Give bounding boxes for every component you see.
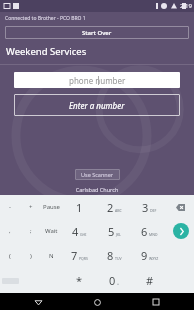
staticText: # [146, 273, 154, 288]
staticText: Weekend Services [6, 45, 87, 58]
button[interactable]: 6 [132, 219, 167, 243]
staticText: 9 [141, 248, 148, 263]
button[interactable]: 5 [97, 219, 132, 243]
staticText: * [76, 273, 83, 288]
staticText: 1 [76, 200, 83, 215]
staticText: Start Over [82, 29, 112, 37]
button[interactable]: 9 [132, 243, 167, 268]
staticText: MNO [149, 232, 158, 237]
button[interactable]: 0 [97, 268, 132, 293]
staticText: + [117, 281, 120, 286]
button[interactable]: N [41, 243, 62, 268]
button[interactable]: 2 [97, 195, 132, 219]
staticText: ) [30, 252, 32, 260]
staticText: 3 [142, 200, 149, 215]
other: Call [173, 223, 189, 239]
staticText: 0 [109, 273, 116, 288]
staticText: 2 [107, 200, 114, 215]
staticText: ; [30, 227, 32, 235]
staticText: WXYZ [149, 256, 159, 261]
staticText: phone number [69, 75, 126, 86]
button[interactable]: 4 [62, 219, 97, 243]
button[interactable]: Wait [41, 219, 62, 243]
button[interactable]: phone number [14, 72, 180, 88]
button[interactable]: + [20, 195, 41, 219]
staticText: Carlsbad Church [0, 186, 194, 193]
staticText: DEF [150, 208, 157, 213]
button[interactable]: Space [0, 268, 20, 293]
button[interactable]: 8 [97, 243, 132, 268]
staticText: Enter a number [69, 100, 125, 111]
staticText: Use Scanner [81, 171, 114, 178]
staticText: 7 [71, 248, 78, 263]
staticText: , [9, 227, 11, 235]
staticText: 5 [108, 224, 115, 239]
staticText: ( [9, 252, 11, 260]
button[interactable]: # [132, 268, 167, 293]
button[interactable]: 7 [62, 243, 97, 268]
staticText: 8 [107, 248, 114, 263]
button[interactable]: - [0, 195, 20, 219]
staticText: + [29, 203, 33, 211]
button[interactable]: Call [167, 219, 194, 243]
button[interactable]: , [0, 219, 20, 243]
button[interactable]: Pause [41, 195, 62, 219]
staticText: 4 [72, 224, 79, 239]
staticText: PQRS [79, 256, 88, 261]
staticText: ABC [115, 208, 122, 213]
other: Delete [176, 204, 185, 211]
button[interactable]: Use Scanner [81, 171, 114, 178]
button[interactable]: Back [30, 294, 46, 310]
staticText: Pause [43, 203, 60, 211]
button[interactable]: Home [89, 294, 105, 310]
button[interactable]: Start Over [5, 26, 189, 39]
button[interactable]: ) [20, 243, 41, 268]
staticText: 2:19 [180, 2, 192, 10]
button[interactable]: Delete [167, 195, 194, 219]
button[interactable]: * [62, 268, 97, 293]
staticText: Connected to Brother - PCO BRO 1 [5, 15, 86, 22]
staticText: - [9, 203, 11, 211]
staticText: GHI [80, 232, 87, 237]
staticText: JKL [116, 232, 121, 237]
button[interactable]: 3 [132, 195, 167, 219]
button[interactable]: Recents [148, 294, 164, 310]
button[interactable]: ; [20, 219, 41, 243]
staticText: TUV [115, 256, 122, 261]
button[interactable]: 1 [62, 195, 97, 219]
staticText: Wait [45, 227, 58, 235]
staticText: 6 [141, 224, 148, 239]
button[interactable]: ( [0, 243, 20, 268]
button[interactable]: Enter a number [14, 94, 180, 116]
staticText: N [49, 252, 54, 260]
